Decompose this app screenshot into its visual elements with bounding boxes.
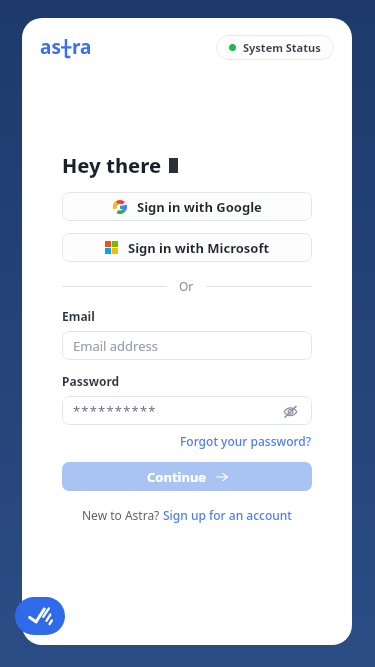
staticText: Continue: [147, 468, 207, 486]
staticText: Sign up for an account: [163, 507, 292, 523]
staticText: Hey there: [62, 152, 162, 179]
staticText: Forgot your password?: [180, 433, 312, 449]
staticText: New to Astra?: [82, 507, 163, 523]
button[interactable]: Sign in with Microsoft: [62, 233, 312, 262]
button[interactable]: **********: [62, 396, 312, 425]
staticText: Sign in with Microsoft: [128, 239, 270, 257]
staticText: Sign in with Google: [137, 198, 262, 216]
staticText: Email address: [73, 337, 158, 355]
button[interactable]: Continue: [62, 462, 312, 491]
staticText: ra: [72, 34, 92, 60]
button[interactable]: Forgot your password?: [180, 433, 312, 449]
button[interactable]: Sign in with Google: [62, 192, 312, 221]
button[interactable]: Support chat: [15, 597, 65, 635]
staticText: **********: [73, 402, 157, 420]
staticText: as: [40, 34, 61, 60]
staticText: Or: [179, 278, 194, 294]
staticText: System Status: [243, 40, 321, 55]
button[interactable]: Email address: [62, 331, 312, 360]
button[interactable]: Show password: [279, 400, 301, 422]
staticText: Password: [62, 373, 120, 389]
button[interactable]: System Status: [216, 35, 334, 60]
button[interactable]: Sign up for an account: [163, 507, 292, 523]
staticText: Email: [62, 308, 95, 324]
